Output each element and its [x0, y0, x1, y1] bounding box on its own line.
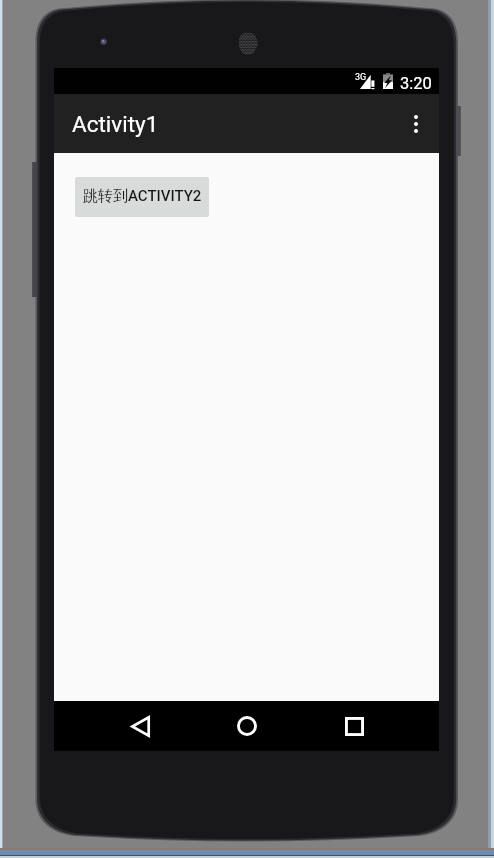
button[interactable]: Recent apps	[326, 701, 382, 751]
staticText: 3:20	[400, 74, 432, 93]
staticText: 跳转到ACTIVITY2	[83, 187, 202, 206]
button[interactable]: Back	[112, 701, 168, 751]
button[interactable]: Home	[219, 701, 275, 751]
button[interactable]: 跳转到ACTIVITY2	[75, 177, 209, 216]
staticText: 3G	[355, 72, 367, 83]
button[interactable]: More options	[398, 100, 434, 148]
staticText: Activity1	[72, 111, 159, 137]
